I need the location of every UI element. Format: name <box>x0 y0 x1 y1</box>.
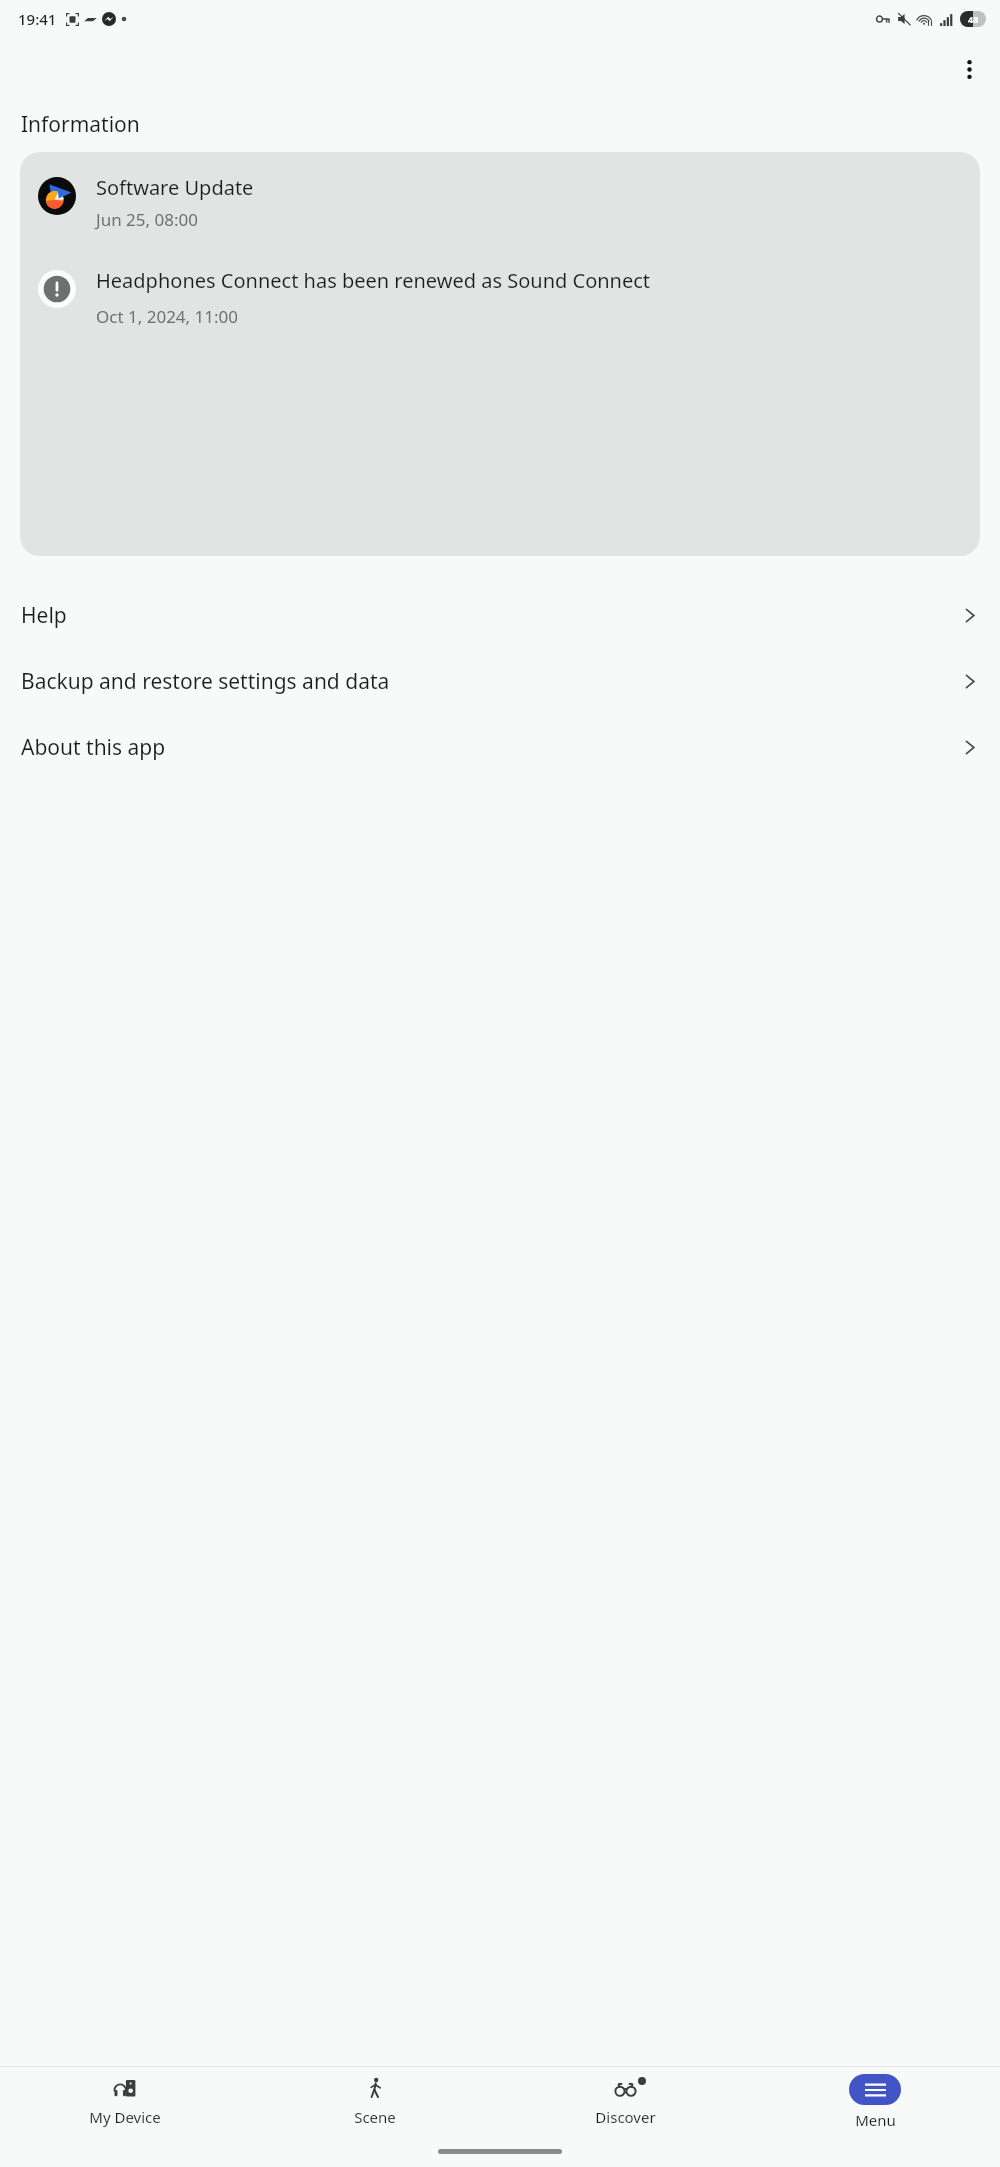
button[interactable]: About this app <box>0 722 1000 772</box>
button[interactable]: My Device <box>0 2067 250 2135</box>
button[interactable]: More options <box>945 45 993 93</box>
button[interactable]: Menu <box>750 2067 1000 2135</box>
button[interactable]: Scene <box>250 2067 500 2135</box>
staticText: Discover <box>595 2107 656 2127</box>
staticText: About this app <box>21 733 961 762</box>
staticText: Oct 1, 2024, 11:00 <box>96 305 239 328</box>
button[interactable]: Headphones Connect has been renewed as S… <box>20 231 980 328</box>
button[interactable]: Discover <box>500 2067 750 2135</box>
staticText: Jun 25, 08:00 <box>96 208 198 231</box>
staticText: Help <box>21 601 961 630</box>
staticText: 19:41 <box>18 9 57 29</box>
staticText: Information <box>21 110 140 139</box>
staticText: Backup and restore settings and data <box>21 667 961 696</box>
button[interactable]: Backup and restore settings and data <box>0 656 1000 706</box>
staticText: 48 <box>968 13 979 25</box>
button[interactable]: Software Update <box>20 152 980 231</box>
button[interactable]: Help <box>0 590 1000 640</box>
staticText: Menu <box>855 2110 896 2130</box>
staticText: Software Update <box>96 174 254 201</box>
staticText: My Device <box>89 2107 161 2127</box>
staticText: Scene <box>354 2107 396 2127</box>
staticText: Headphones Connect has been renewed as S… <box>96 267 651 294</box>
